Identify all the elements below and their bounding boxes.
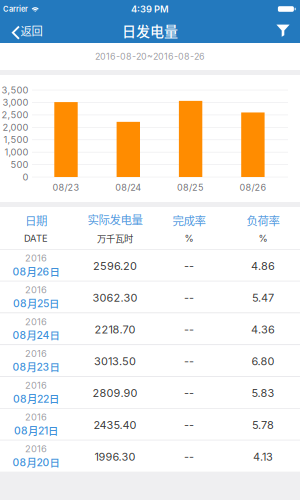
button[interactable]: 2016 [0, 313, 300, 344]
staticText: 1,000 [4, 146, 28, 158]
staticText: 日期 [25, 212, 47, 229]
staticText: 08/26 [239, 182, 266, 193]
staticText: 08月26日 [12, 264, 59, 279]
staticText: 08/24 [115, 182, 141, 193]
staticText: 5.47 [252, 291, 274, 304]
staticText: Carrier [3, 4, 28, 13]
staticText: % [184, 233, 193, 244]
staticText: 2016 [25, 348, 47, 359]
staticText: 08月20日 [12, 455, 59, 470]
staticText: 2016 [25, 443, 47, 455]
staticText: 4.36 [251, 323, 275, 336]
staticText: 5.78 [252, 418, 274, 431]
staticText: 08月25日 [13, 296, 59, 311]
staticText: 2016-08-20~2016-08-26 [95, 51, 205, 62]
button[interactable]: 2016 [0, 250, 300, 281]
staticText: 2016 [25, 380, 47, 391]
staticText: 08月24日 [12, 327, 59, 342]
button[interactable]: 返回 [0, 18, 50, 43]
staticText: 负荷率 [246, 212, 279, 229]
staticText: 2016 [25, 252, 47, 264]
staticText: 08月22日 [13, 391, 59, 406]
staticText: DATE [24, 233, 48, 244]
staticText: -- [184, 450, 194, 463]
staticText: 08月21日 [14, 423, 58, 438]
staticText: -- [184, 291, 194, 304]
staticText: 完成率 [172, 212, 205, 229]
button[interactable]: 2016 [0, 440, 300, 472]
staticText: 500 [10, 159, 28, 170]
button[interactable]: 2016 [0, 281, 300, 313]
staticText: -- [184, 418, 194, 431]
staticText: 0 [22, 171, 28, 183]
staticText: -- [184, 355, 194, 368]
button[interactable]: 2016-08-20~2016-08-26 [0, 43, 300, 70]
staticText: 万千瓦时 [97, 231, 133, 245]
staticText: 2016 [25, 284, 47, 296]
staticText: 2435.40 [93, 418, 136, 431]
staticText: 返回 [20, 22, 42, 39]
button[interactable]: 2016 [0, 377, 300, 408]
staticText: 08/25 [177, 182, 204, 193]
staticText: 5.83 [251, 386, 274, 400]
staticText: % [258, 233, 267, 244]
button[interactable]: 2016 [0, 409, 300, 440]
button[interactable]: 2016 [0, 345, 300, 376]
staticText: -- [184, 386, 194, 400]
staticText: 2809.90 [92, 386, 137, 400]
staticText: 实际发电量 [87, 211, 142, 227]
staticText: 3,000 [2, 97, 28, 108]
staticText: 6.80 [251, 355, 274, 368]
staticText: 2016 [25, 411, 47, 423]
staticText: 2,000 [2, 122, 28, 133]
staticText: 3,500 [1, 84, 28, 96]
staticText: 1996.30 [94, 450, 135, 463]
staticText: 2,500 [1, 109, 28, 120]
staticText: 2016 [25, 316, 47, 327]
staticText: -- [184, 323, 194, 336]
staticText: 日发电量 [122, 20, 178, 41]
staticText: -- [184, 259, 194, 272]
staticText: 2596.20 [93, 259, 137, 272]
staticText: 08/23 [52, 182, 79, 193]
staticText: 3013.50 [94, 355, 136, 368]
staticText: 4:39 PM [131, 3, 169, 15]
button[interactable]: 筛选 [266, 18, 300, 43]
staticText: 2218.70 [94, 323, 135, 336]
staticText: 08月23日 [12, 359, 59, 374]
staticText: 4.13 [253, 450, 273, 463]
staticText: 1,500 [3, 134, 28, 145]
staticText: 3062.30 [92, 291, 137, 304]
staticText: 4.86 [251, 259, 275, 272]
